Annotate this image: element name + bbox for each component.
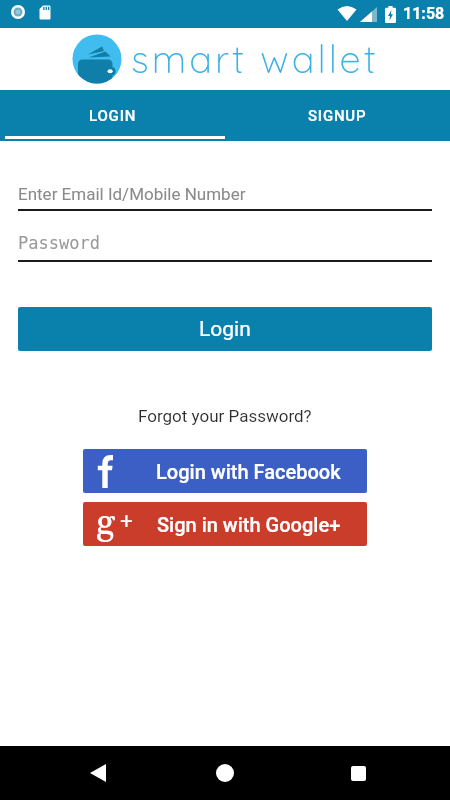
button[interactable]: Login with Facebook <box>83 449 367 493</box>
staticText: Login with Facebook <box>156 460 341 483</box>
staticText: LOGIN <box>89 107 137 125</box>
staticText: Forgot your Password? <box>138 406 312 426</box>
button[interactable] <box>78 753 118 793</box>
staticText: smart wallet <box>131 35 379 83</box>
staticText: SIGNUP <box>308 107 367 125</box>
button[interactable]: SIGNUP <box>225 90 450 141</box>
staticText: g <box>96 502 115 544</box>
staticText: 11:58 <box>403 4 445 23</box>
button[interactable] <box>205 753 245 793</box>
staticText: Password <box>18 233 100 253</box>
button[interactable]: g <box>83 502 367 546</box>
button[interactable]: Login <box>18 307 432 351</box>
staticText: + <box>119 507 134 536</box>
button[interactable] <box>338 753 378 793</box>
staticText: Sign in with Google+ <box>157 513 341 536</box>
button[interactable]: LOGIN <box>0 90 225 141</box>
staticText: Enter Email Id/Mobile Number <box>18 184 246 204</box>
button[interactable]: Forgot your Password? <box>138 406 312 426</box>
staticText: Login <box>199 317 251 342</box>
button[interactable]: Enter Email Id/Mobile Number <box>18 184 432 204</box>
button[interactable]: Password <box>18 233 432 253</box>
